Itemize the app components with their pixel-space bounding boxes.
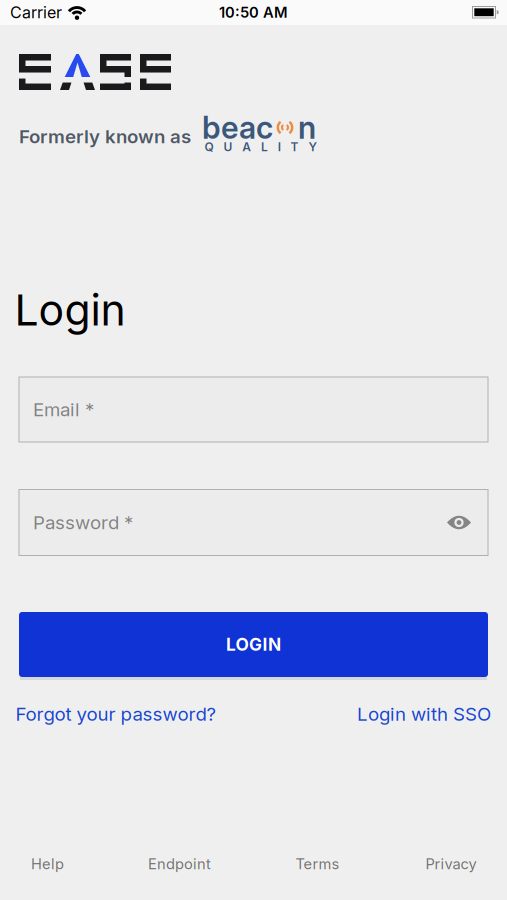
button[interactable]: Privacy [425, 855, 476, 873]
staticText: Login with SSO [357, 703, 491, 725]
staticText: T [291, 140, 299, 154]
staticText: Y [308, 140, 317, 154]
button[interactable]: Email * [19, 377, 488, 442]
staticText: Endpoint [148, 855, 211, 873]
button[interactable]: Password * [19, 489, 488, 555]
staticText: Carrier [10, 3, 62, 22]
staticText: Terms [295, 855, 339, 873]
button[interactable]: Help [31, 855, 64, 873]
staticText: Help [31, 855, 64, 873]
button[interactable]: Terms [295, 855, 339, 873]
button[interactable]: Forgot your password? [15, 703, 216, 725]
staticText: Q [205, 140, 214, 154]
staticText: 10:50 AM [219, 4, 288, 21]
staticText: LOGIN [226, 634, 281, 655]
staticText: Privacy [425, 855, 476, 873]
staticText: n [298, 109, 316, 146]
button[interactable]: Login with SSO [357, 703, 491, 725]
staticText: Login [14, 285, 125, 335]
button[interactable]: LOGIN [19, 612, 488, 677]
staticText: I [278, 140, 281, 154]
button[interactable]: Endpoint [148, 855, 211, 873]
staticText: Password * [33, 511, 133, 533]
staticText: Email * [33, 398, 94, 420]
staticText: beac [202, 109, 273, 146]
staticText: Formerly known as [19, 125, 191, 147]
staticText: A [242, 140, 251, 154]
staticText: Forgot your password? [15, 703, 216, 725]
staticText: L [261, 140, 268, 154]
staticText: U [223, 140, 232, 154]
